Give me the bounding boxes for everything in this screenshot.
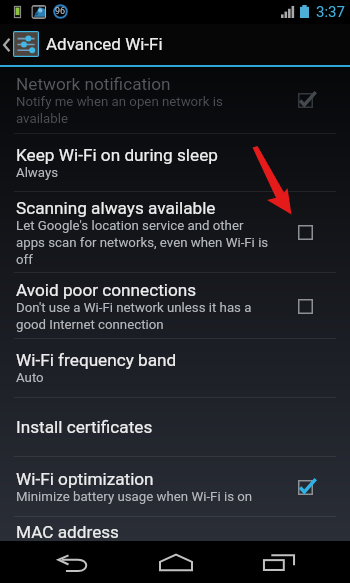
staticText: Don't use a Wi-Fi network unless it has … [16, 300, 271, 332]
button[interactable]: MAC address [0, 517, 350, 540]
button[interactable]: Network notification [0, 67, 350, 133]
staticText: Auto [16, 370, 44, 386]
staticText: MAC address [16, 522, 119, 542]
button[interactable]: Scanning always available [0, 192, 350, 272]
staticText: Keep Wi-Fi on during sleep [16, 145, 218, 165]
staticText: Avoid poor connections [16, 280, 197, 300]
button[interactable]: Wi-Fi optimization [0, 457, 350, 516]
staticText: Advanced Wi-Fi [46, 34, 163, 54]
staticText: Network notification [16, 74, 171, 94]
staticText: Wi-Fi optimization [16, 469, 154, 489]
staticText: 96 [55, 6, 66, 17]
button[interactable]: Avoid poor connections [0, 273, 350, 338]
staticText: Install certificates [16, 417, 153, 437]
button[interactable]: Back [23, 541, 123, 583]
staticText: Always [16, 165, 59, 181]
button[interactable]: Recent apps [229, 541, 329, 583]
button[interactable]: Wi-Fi frequency band [0, 339, 350, 397]
staticText: Scanning always available [16, 198, 216, 218]
staticText: Let Google's location service and other … [16, 218, 271, 267]
staticText: Notify me when an open network is availa… [16, 94, 271, 126]
button[interactable]: Navigate up [0, 24, 44, 65]
button[interactable]: Home [126, 541, 226, 583]
staticText: 3:37 [316, 3, 345, 21]
button[interactable]: Install certificates [0, 398, 350, 456]
staticText: Minimize battery usage when Wi-Fi is on [16, 489, 253, 505]
button[interactable]: Keep Wi-Fi on during sleep [0, 134, 350, 191]
staticText: Wi-Fi frequency band [16, 350, 177, 370]
